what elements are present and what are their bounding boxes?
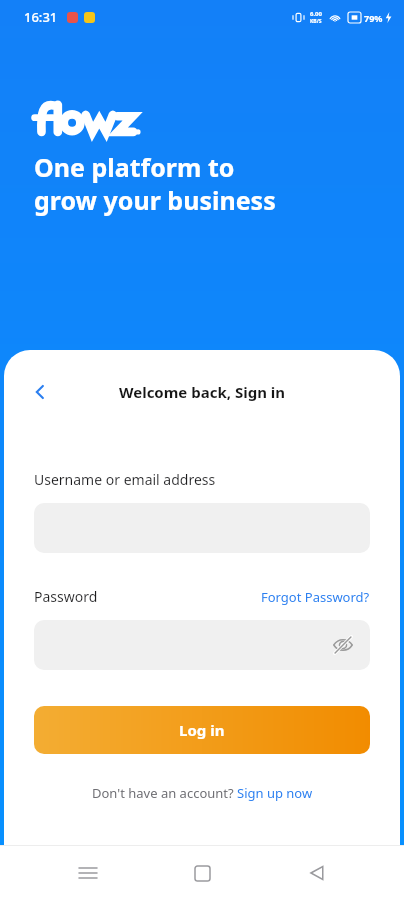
button[interactable]: Forgot Password? xyxy=(261,588,370,606)
staticText: Don't have an account? Sign up now xyxy=(92,784,313,802)
staticText: 16:31 xyxy=(24,8,58,26)
button[interactable]: Show password xyxy=(34,620,370,670)
staticText: Log in xyxy=(179,720,225,740)
button[interactable]: Back xyxy=(22,374,58,410)
staticText: 79% xyxy=(364,12,383,24)
staticText: Forgot Password? xyxy=(261,588,370,606)
button[interactable]: Show password xyxy=(330,632,356,658)
staticText: KB/S xyxy=(310,18,322,25)
staticText: One platform to grow your business xyxy=(34,150,276,217)
button[interactable]: Back xyxy=(290,846,344,900)
button[interactable]: Recents xyxy=(61,846,115,900)
button[interactable]: Don't have an account? Sign up now xyxy=(92,784,313,802)
staticText: Welcome back, Sign in xyxy=(119,382,286,402)
staticText: 6.00 xyxy=(310,10,322,18)
staticText: Username or email address xyxy=(34,470,216,489)
staticText: Password xyxy=(34,587,98,606)
button[interactable]: Log in xyxy=(34,706,370,754)
button[interactable]: Home xyxy=(175,846,229,900)
